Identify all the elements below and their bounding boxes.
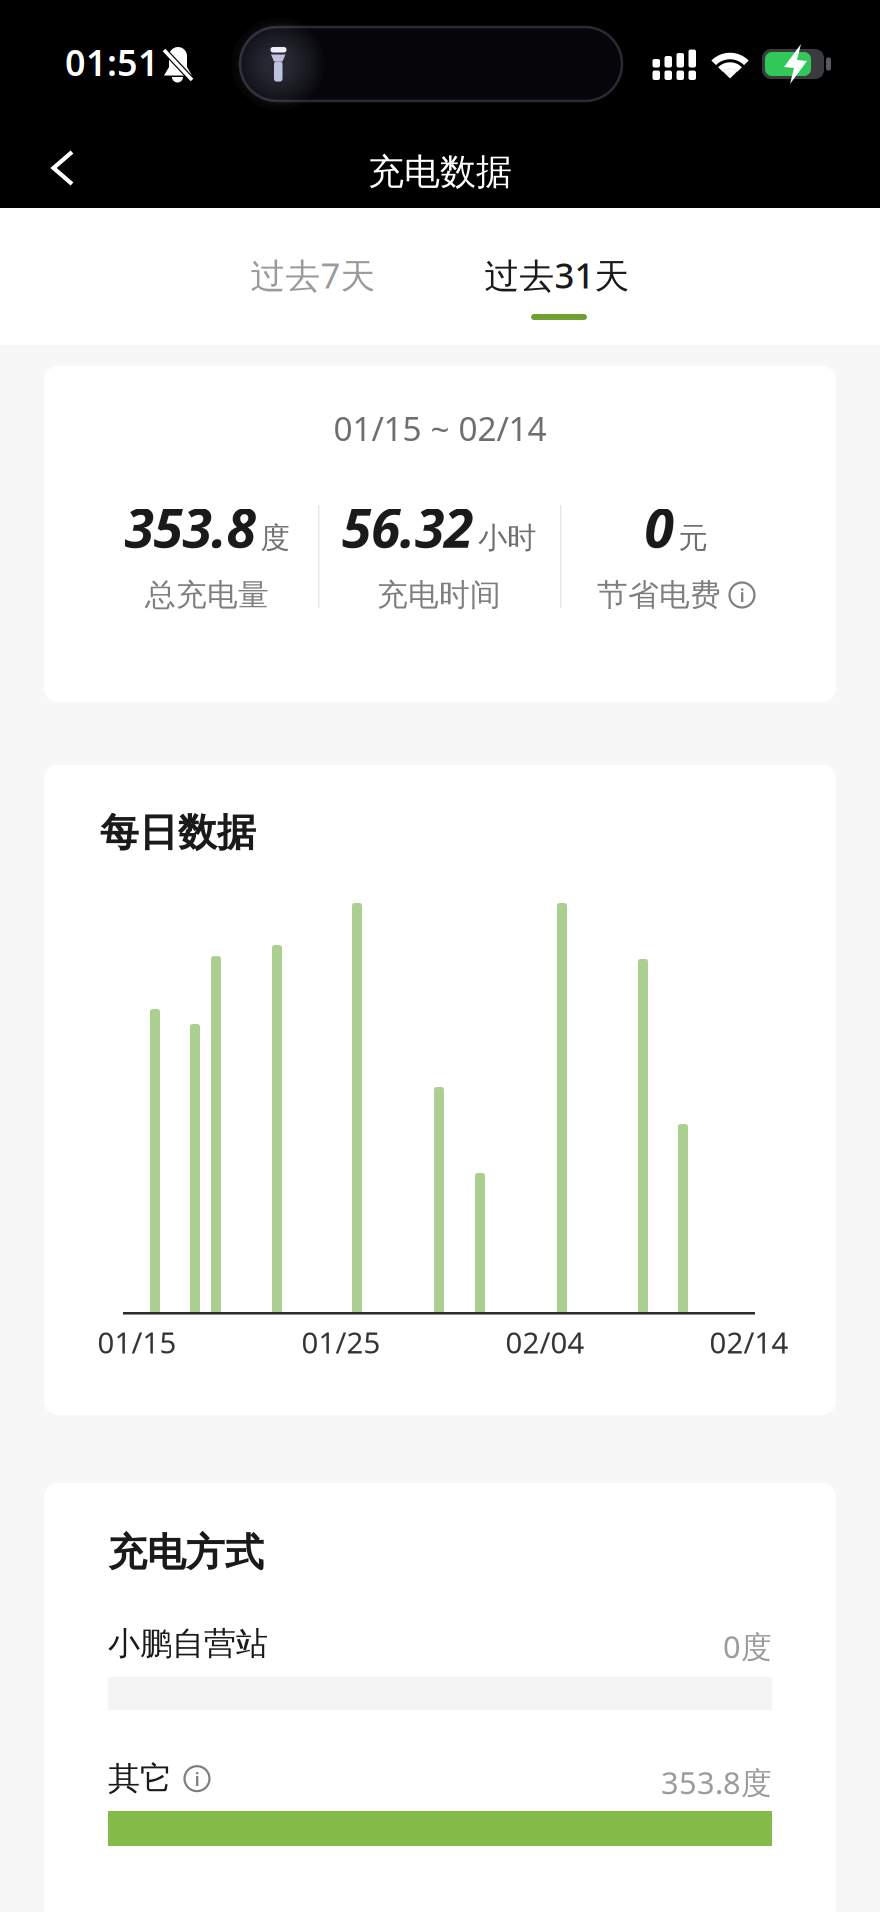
- staticText: 元: [678, 520, 707, 556]
- staticText: 过去7天: [250, 252, 375, 298]
- staticText: 总充电量: [145, 576, 269, 614]
- staticText: 353.8度: [661, 1762, 772, 1803]
- button[interactable]: 关于其它充电方式: [184, 1766, 210, 1792]
- staticText: i: [194, 1766, 199, 1791]
- staticText: i: [739, 583, 744, 607]
- staticText: 度: [260, 520, 289, 556]
- staticText: 0: [644, 492, 673, 562]
- staticText: 01:51: [65, 38, 159, 86]
- staticText: 小鹏自营站: [108, 1624, 268, 1663]
- staticText: 02/04: [505, 1322, 584, 1361]
- staticText: 0度: [723, 1626, 772, 1667]
- staticText: 其它: [108, 1759, 172, 1798]
- staticText: 每日数据: [100, 809, 256, 856]
- button[interactable]: 过去31天: [442, 225, 672, 325]
- staticText: 充电时间: [377, 576, 501, 614]
- staticText: 节省电费: [597, 576, 721, 614]
- staticText: 过去31天: [484, 252, 629, 298]
- staticText: 充电数据: [368, 150, 512, 194]
- staticText: 01/15: [97, 1322, 176, 1361]
- staticText: 02/14: [709, 1322, 788, 1361]
- staticText: 353.8: [124, 492, 255, 562]
- staticText: 充电方式: [108, 1529, 264, 1576]
- staticText: 01/15 ~ 02/14: [333, 406, 546, 450]
- button[interactable]: Back: [20, 127, 108, 215]
- button[interactable]: 关于节省电费: [729, 582, 755, 608]
- staticText: 小时: [478, 520, 536, 556]
- staticText: 01/25: [301, 1322, 380, 1361]
- button[interactable]: 过去7天: [203, 225, 423, 325]
- staticText: 56.32: [342, 492, 473, 562]
